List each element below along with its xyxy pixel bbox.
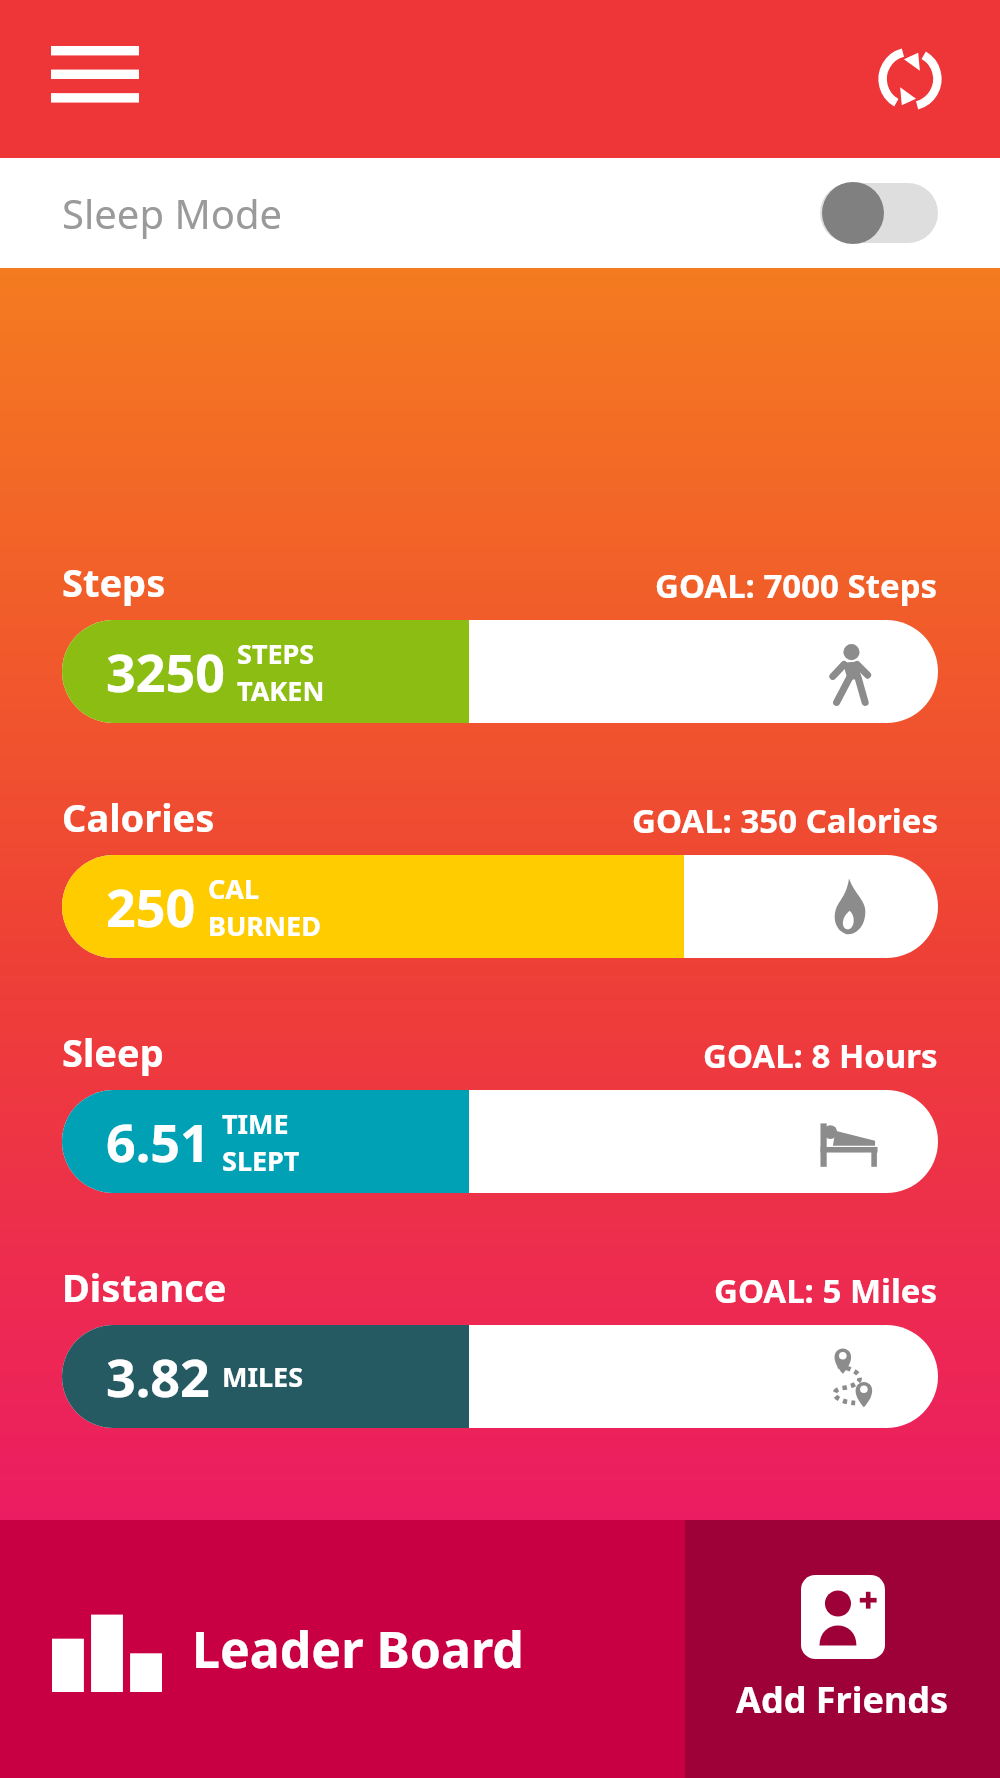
staticText: GOAL: 8 Hours [703,1033,938,1078]
staticText: SLEPT [222,1142,300,1179]
staticText: Distance [62,1261,227,1313]
staticText: CAL [208,870,260,907]
button[interactable]: Leader Board [0,1520,685,1778]
staticText: Steps [62,556,166,608]
staticText: Calories [62,791,215,843]
staticText: TIME [222,1105,289,1142]
staticText: BURNED [208,907,321,944]
button[interactable]: Add Friends [685,1520,1000,1778]
staticText: 3.82 [106,1341,210,1412]
staticText: Sleep Mode [62,186,820,240]
staticText: STEPS [237,635,315,672]
button[interactable]: Refresh [862,31,958,127]
staticText: TAKEN [237,672,325,709]
staticText: Add Friends [736,1675,949,1724]
button[interactable]: 250 [62,855,938,958]
button[interactable]: 3250 [62,620,938,723]
staticText: 250 [106,871,196,942]
staticText: GOAL: 7000 Steps [655,563,938,608]
button[interactable]: 6.51 [62,1090,938,1193]
staticText: 3250 [106,636,225,707]
staticText: GOAL: 350 Calories [632,798,938,843]
staticText: MILES [222,1358,304,1395]
staticText: GOAL: 5 Miles [714,1268,938,1313]
button[interactable]: Menu [40,34,150,124]
button[interactable]: 3.82 [62,1325,938,1428]
staticText: Sleep [62,1026,164,1078]
button[interactable]: Sleep Mode [0,158,1000,268]
staticText: Leader Board [192,1615,524,1683]
staticText: 6.51 [106,1106,210,1177]
